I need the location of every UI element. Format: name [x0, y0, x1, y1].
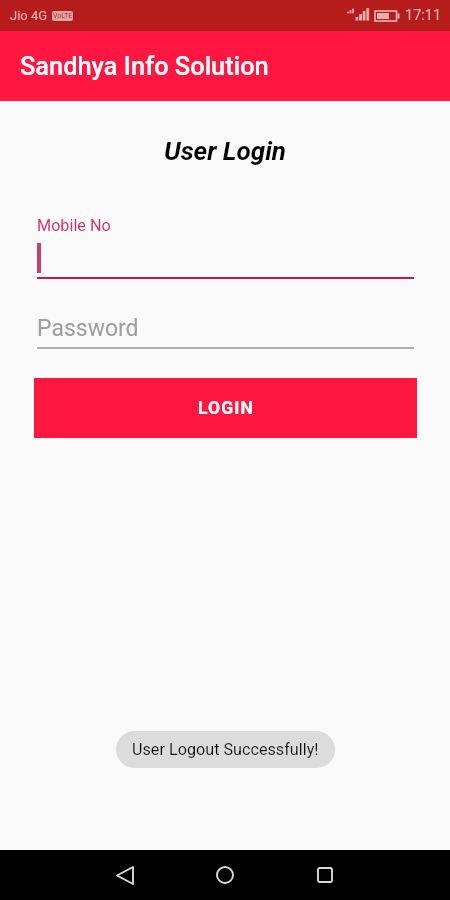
- staticText: Sandhya Info Solution: [20, 51, 269, 81]
- staticText: 17:11: [405, 7, 442, 24]
- button[interactable]: Mobile No: [37, 216, 414, 279]
- staticText: Mobile No: [37, 216, 111, 235]
- button[interactable]: LOGIN: [34, 378, 417, 438]
- button[interactable]: Recents: [290, 850, 360, 900]
- button[interactable]: Home: [190, 850, 260, 900]
- staticText: Password: [37, 315, 139, 342]
- button[interactable]: Back: [90, 850, 160, 900]
- staticText: VoLTE: [53, 12, 73, 20]
- staticText: LOGIN: [198, 398, 254, 419]
- staticText: Jio 4G: [10, 8, 48, 23]
- button[interactable]: Password: [37, 315, 414, 349]
- staticText: User Login: [0, 136, 450, 166]
- staticText: User Logout Successfully!: [132, 740, 319, 759]
